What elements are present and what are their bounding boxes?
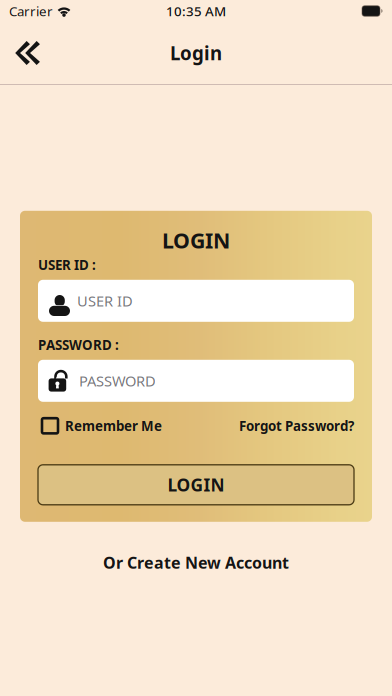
staticText: 10:35 AM [166, 2, 226, 20]
staticText: LOGIN [162, 226, 230, 254]
button[interactable]: Back [0, 29, 53, 77]
button[interactable]: Or Create New Account [87, 542, 305, 583]
button[interactable]: Remember Me [38, 417, 162, 435]
button[interactable]: LOGIN [38, 465, 354, 505]
staticText: Carrier [9, 2, 53, 20]
button[interactable]: Forgot Password? [239, 417, 354, 435]
staticText: Or Create New Account [103, 552, 289, 573]
staticText: LOGIN [167, 473, 224, 496]
staticText: USER ID [77, 291, 133, 311]
staticText: PASSWORD [79, 371, 156, 391]
button[interactable]: PASSWORD [38, 360, 354, 402]
staticText: PASSWORD : [38, 336, 119, 354]
button[interactable]: USER ID [38, 280, 354, 322]
staticText: Remember Me [65, 417, 162, 435]
staticText: Forgot Password? [239, 417, 354, 435]
staticText: Login [170, 41, 222, 65]
staticText: USER ID : [38, 256, 96, 274]
